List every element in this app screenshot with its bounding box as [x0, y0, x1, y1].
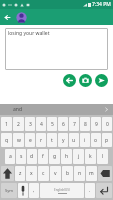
- button[interactable]: z: [15, 166, 25, 181]
- staticText: u: [72, 137, 76, 144]
- button[interactable]: Contact avatar: [15, 11, 28, 24]
- staticText: Sym: [5, 188, 13, 193]
- button[interactable]: Back: [1, 11, 13, 23]
- button[interactable]: f: [38, 149, 48, 164]
- button[interactable]: s: [16, 149, 26, 164]
- staticText: n: [78, 170, 82, 177]
- button[interactable]: 2: [13, 117, 24, 131]
- button[interactable]: h: [61, 149, 72, 164]
- staticText: x: [30, 170, 33, 177]
- staticText: a: [9, 153, 12, 160]
- staticText: 3: [29, 121, 32, 128]
- button[interactable]: o: [91, 133, 101, 147]
- staticText: 7: [73, 121, 76, 128]
- button[interactable]: k: [85, 149, 96, 164]
- button[interactable]: Space: [40, 183, 84, 198]
- staticText: g: [53, 153, 57, 160]
- button[interactable]: Voice input: [18, 183, 28, 198]
- staticText: j: [78, 153, 80, 160]
- staticText: losing your wallet: [8, 30, 50, 37]
- button[interactable]: 9: [91, 117, 101, 131]
- button[interactable]: Sym: [1, 183, 17, 198]
- staticText: y: [62, 137, 65, 144]
- staticText: b: [66, 170, 70, 177]
- button[interactable]: e: [25, 133, 35, 147]
- button[interactable]: Enter: [96, 183, 112, 198]
- staticText: 7:34 PM: [92, 1, 111, 8]
- staticText: r: [40, 137, 43, 144]
- staticText: k: [89, 153, 92, 160]
- button[interactable]: 8: [80, 117, 90, 131]
- button[interactable]: b: [62, 166, 73, 181]
- staticText: 4: [40, 121, 43, 128]
- button[interactable]: .: [85, 183, 95, 198]
- button[interactable]: a: [5, 149, 15, 164]
- button[interactable]: p: [102, 133, 112, 147]
- button[interactable]: Attach: [63, 74, 76, 87]
- staticText: m: [89, 170, 94, 177]
- button[interactable]: l: [97, 149, 108, 164]
- staticText: t: [51, 137, 53, 144]
- button[interactable]: m: [86, 166, 97, 181]
- staticText: 6: [62, 121, 65, 128]
- staticText: 5: [51, 121, 54, 128]
- button[interactable]: 4: [36, 117, 46, 131]
- staticText: 9: [95, 121, 98, 128]
- button[interactable]: g: [49, 149, 60, 164]
- button[interactable]: 0: [102, 117, 112, 131]
- button[interactable]: v: [50, 166, 61, 181]
- staticText: 8: [84, 121, 87, 128]
- staticText: .: [89, 187, 91, 194]
- button[interactable]: r: [36, 133, 46, 147]
- button[interactable]: Camera: [79, 74, 92, 87]
- staticText: ,: [33, 187, 35, 194]
- staticText: l: [102, 153, 104, 160]
- staticText: o: [94, 137, 98, 144]
- staticText: h: [65, 153, 69, 160]
- button[interactable]: n: [74, 166, 85, 181]
- staticText: p: [105, 137, 109, 144]
- button[interactable]: i: [80, 133, 90, 147]
- button[interactable]: c: [38, 166, 49, 181]
- button[interactable]: 5: [47, 117, 57, 131]
- staticText: q: [5, 137, 9, 144]
- staticText: English(US): [54, 188, 70, 192]
- button[interactable]: w: [13, 133, 24, 147]
- staticText: d: [30, 153, 34, 160]
- staticText: z: [19, 170, 22, 177]
- staticText: 2: [17, 121, 20, 128]
- button[interactable]: y: [58, 133, 68, 147]
- staticText: s: [20, 153, 23, 160]
- button[interactable]: Send: [95, 74, 108, 87]
- button[interactable]: Backspace: [98, 166, 112, 181]
- staticText: w: [17, 137, 21, 144]
- staticText: e: [29, 137, 32, 144]
- button[interactable]: 3: [25, 117, 35, 131]
- button[interactable]: losing your wallet: [5, 28, 108, 70]
- button[interactable]: Shift: [1, 166, 14, 181]
- button[interactable]: 1: [1, 117, 12, 131]
- button[interactable]: u: [69, 133, 79, 147]
- button[interactable]: ,: [29, 183, 39, 198]
- staticText: f: [42, 153, 44, 160]
- button[interactable]: t: [47, 133, 57, 147]
- staticText: v: [54, 170, 57, 177]
- button[interactable]: q: [1, 133, 12, 147]
- button[interactable]: x: [26, 166, 37, 181]
- staticText: i: [84, 137, 86, 144]
- button[interactable]: and: [13, 106, 22, 113]
- staticText: 1: [5, 121, 8, 128]
- button[interactable]: j: [73, 149, 84, 164]
- button[interactable]: More suggestions: [102, 105, 111, 114]
- staticText: c: [42, 170, 45, 177]
- button[interactable]: 7: [69, 117, 79, 131]
- staticText: 0: [106, 121, 109, 128]
- button[interactable]: 6: [58, 117, 68, 131]
- button[interactable]: d: [27, 149, 37, 164]
